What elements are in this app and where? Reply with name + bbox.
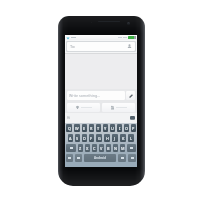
button[interactable]: D [82,134,87,142]
staticText: W [75,126,79,131]
staticText: U [111,126,114,131]
button[interactable]: H [104,134,110,142]
button[interactable]: G [96,134,102,142]
staticText: L [130,136,133,141]
button[interactable]: Q [66,124,72,132]
button[interactable]: Language [75,154,82,162]
staticText: R [90,126,93,131]
button[interactable]: V [99,144,104,152]
staticText: Q [68,126,71,131]
button[interactable]: M [120,144,125,152]
staticText: D [83,136,86,141]
button[interactable]: L [128,134,134,142]
button[interactable]: S [75,134,80,142]
button[interactable]: Add photo [102,103,135,112]
staticText: Hi [67,116,71,120]
button[interactable]: Z [78,144,83,152]
staticText: S [76,136,79,141]
staticText: C [93,146,96,151]
button[interactable]: Send message [67,103,100,112]
button[interactable]: Comma [118,154,126,162]
staticText: A [69,136,72,141]
staticText: K [122,136,125,141]
staticText: To: [70,44,76,49]
button[interactable]: Voice [130,116,135,121]
button[interactable]: I [117,124,122,132]
staticText: Y [104,126,107,131]
button[interactable]: K [120,134,126,142]
button[interactable]: Attach [126,91,135,100]
staticText: P [132,126,135,131]
button[interactable]: R [89,124,94,132]
button[interactable]: Space [84,154,116,162]
staticText: Write something... [69,93,101,98]
staticText: Z [79,146,82,151]
button[interactable]: To: [67,42,135,51]
button[interactable]: C [92,144,97,152]
staticText: B [107,146,110,151]
button[interactable]: W [74,124,80,132]
staticText: E [83,126,86,131]
button[interactable]: Choose contact [126,43,133,50]
button[interactable]: T [96,124,101,132]
button[interactable]: F [89,134,94,142]
staticText: X [86,146,89,151]
button[interactable]: J [112,134,118,142]
staticText: H [106,136,109,141]
button[interactable]: Y [103,124,108,132]
button[interactable]: U [110,124,115,132]
button[interactable]: E [82,124,87,132]
button[interactable]: A [68,134,73,142]
button[interactable]: Symbols [66,154,73,162]
staticText: T [97,126,100,131]
staticText: N [114,146,117,151]
staticText: G [98,136,101,141]
button[interactable]: Write something... [67,91,125,100]
button[interactable]: Enter [128,154,136,162]
staticText: V [100,146,103,151]
button[interactable]: B [106,144,111,152]
staticText: Android [94,156,106,160]
button[interactable]: P [131,124,136,132]
staticText: F [90,136,93,141]
staticText: O [125,126,128,131]
button[interactable]: X [85,144,90,152]
button[interactable]: O [124,124,129,132]
button[interactable]: Backspace [127,144,136,152]
staticText: I [119,126,121,131]
staticText: M [121,146,125,151]
staticText: J [114,136,116,141]
button[interactable]: Shift [66,144,76,152]
button[interactable]: N [113,144,118,152]
